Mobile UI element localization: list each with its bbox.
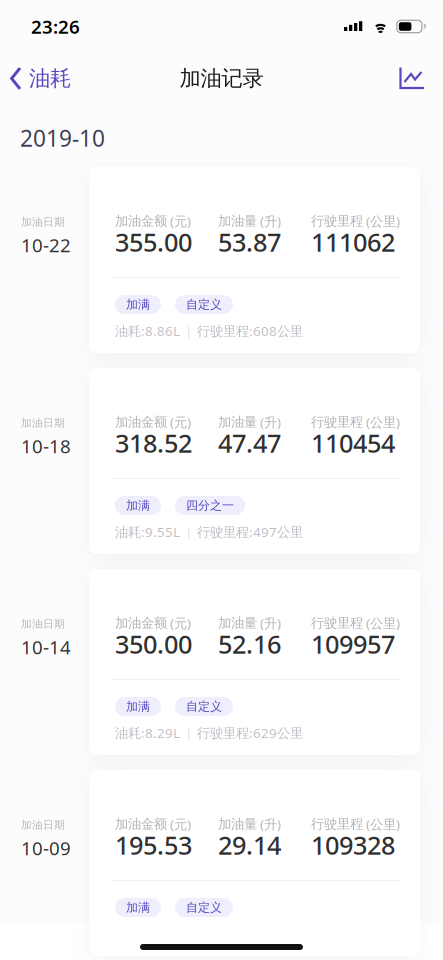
staticText: 350.00 bbox=[115, 627, 192, 661]
staticText: 53.87 bbox=[218, 225, 281, 259]
staticText: 自定义 bbox=[186, 900, 222, 915]
staticText: 355.00 bbox=[115, 225, 192, 259]
staticText: 行驶里程 bbox=[311, 816, 363, 832]
staticText: 318.52 bbox=[115, 426, 192, 460]
staticText: 油耗 bbox=[29, 65, 71, 92]
staticText: 自定义 bbox=[186, 699, 222, 714]
staticText: (元) bbox=[170, 413, 191, 431]
staticText: (公里) bbox=[366, 815, 400, 833]
staticText: 加油日期 bbox=[21, 818, 65, 831]
staticText: 加满 bbox=[126, 498, 150, 513]
staticText: 10-18 bbox=[21, 434, 71, 458]
staticText: 加油金额 bbox=[115, 615, 167, 631]
button[interactable]: 四分之一 bbox=[175, 496, 245, 515]
staticText: 29.14 bbox=[218, 828, 281, 862]
staticText: (公里) bbox=[366, 413, 400, 431]
staticText: (升) bbox=[260, 212, 281, 230]
button[interactable]: 加满 bbox=[115, 496, 161, 515]
staticText: 47.47 bbox=[218, 426, 281, 460]
staticText: 加油量 bbox=[218, 213, 257, 229]
staticText: 行驶里程:629公里 bbox=[197, 724, 303, 742]
staticText: (公里) bbox=[366, 614, 400, 632]
button[interactable]: 自定义 bbox=[175, 295, 233, 314]
button[interactable]: 加满 bbox=[115, 295, 161, 314]
staticText: 行驶里程 bbox=[311, 414, 363, 430]
staticText: 行驶里程 bbox=[311, 213, 363, 229]
staticText: (升) bbox=[260, 614, 281, 632]
staticText: 四分之一 bbox=[186, 498, 234, 513]
staticText: | bbox=[185, 322, 192, 340]
staticText: 自定义 bbox=[186, 297, 222, 312]
staticText: 加油日期 bbox=[21, 215, 65, 228]
staticText: 23:26 bbox=[31, 14, 80, 39]
staticText: 10-14 bbox=[21, 635, 71, 659]
staticText: 10-09 bbox=[21, 836, 71, 860]
staticText: 52.16 bbox=[218, 627, 281, 661]
staticText: (升) bbox=[260, 815, 281, 833]
staticText: 加满 bbox=[126, 900, 150, 915]
staticText: 加油金额 bbox=[115, 816, 167, 832]
staticText: (元) bbox=[170, 815, 191, 833]
staticText: 加油日期 bbox=[21, 617, 65, 630]
staticText: 加油量 bbox=[218, 615, 257, 631]
staticText: 加满 bbox=[126, 699, 150, 714]
staticText: 加油日期 bbox=[21, 416, 65, 429]
staticText: (元) bbox=[170, 614, 191, 632]
button[interactable]: 自定义 bbox=[175, 697, 233, 716]
staticText: 行驶里程:497公里 bbox=[197, 523, 303, 541]
button[interactable]: 油耗 bbox=[0, 57, 71, 100]
staticText: 油耗:8.29L bbox=[115, 724, 180, 742]
staticText: 2019-10 bbox=[20, 123, 105, 153]
button[interactable]: 加满 bbox=[115, 697, 161, 716]
staticText: 111062 bbox=[311, 225, 395, 259]
staticText: (元) bbox=[170, 212, 191, 230]
staticText: (公里) bbox=[366, 212, 400, 230]
staticText: 油耗:8.86L bbox=[115, 322, 180, 340]
staticText: 195.53 bbox=[115, 828, 192, 862]
staticText: 10-22 bbox=[21, 233, 71, 257]
staticText: (升) bbox=[260, 413, 281, 431]
staticText: | bbox=[185, 523, 192, 541]
staticText: 110454 bbox=[311, 426, 395, 460]
staticText: 加油金额 bbox=[115, 414, 167, 430]
staticText: 加油量 bbox=[218, 816, 257, 832]
button[interactable]: 统计图表 bbox=[399, 59, 443, 98]
button[interactable]: 自定义 bbox=[175, 898, 233, 917]
staticText: 行驶里程 bbox=[311, 615, 363, 631]
staticText: 109328 bbox=[311, 828, 395, 862]
staticText: 109957 bbox=[311, 627, 395, 661]
staticText: 加满 bbox=[126, 297, 150, 312]
staticText: | bbox=[185, 724, 192, 742]
staticText: 加油记录 bbox=[179, 65, 263, 92]
staticText: 油耗:9.55L bbox=[115, 523, 180, 541]
staticText: 行驶里程:608公里 bbox=[197, 322, 303, 340]
button[interactable]: 加满 bbox=[115, 898, 161, 917]
staticText: 加油金额 bbox=[115, 213, 167, 229]
staticText: 加油量 bbox=[218, 414, 257, 430]
